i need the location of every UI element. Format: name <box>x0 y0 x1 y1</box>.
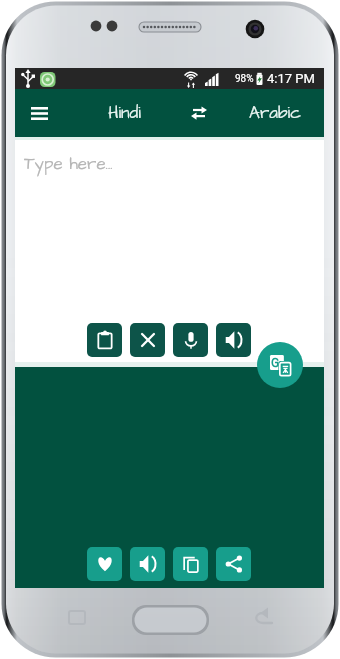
button[interactable]: Arabic <box>245 91 305 135</box>
button[interactable]: Copy <box>173 547 208 581</box>
staticText: Arabic <box>249 101 301 125</box>
button[interactable]: Paste <box>87 323 122 357</box>
staticText: 4:17 PM <box>267 71 315 86</box>
button[interactable]: Voice input <box>173 323 208 357</box>
button[interactable]: Swap languages <box>179 93 219 133</box>
staticText: Hindi <box>108 101 141 125</box>
staticText: 98% <box>235 73 254 85</box>
staticText: G <box>271 356 280 370</box>
button[interactable]: Favourite <box>87 547 122 581</box>
button[interactable]: Clear <box>130 323 165 357</box>
button[interactable]: Hindi <box>94 91 154 135</box>
button[interactable]: Menu <box>19 93 59 133</box>
staticText: Type here... <box>24 152 113 176</box>
button[interactable]: Speak <box>216 323 251 357</box>
button[interactable]: Speak translation <box>130 547 165 581</box>
button[interactable]: Share <box>216 547 251 581</box>
button[interactable]: Translate <box>257 342 303 388</box>
